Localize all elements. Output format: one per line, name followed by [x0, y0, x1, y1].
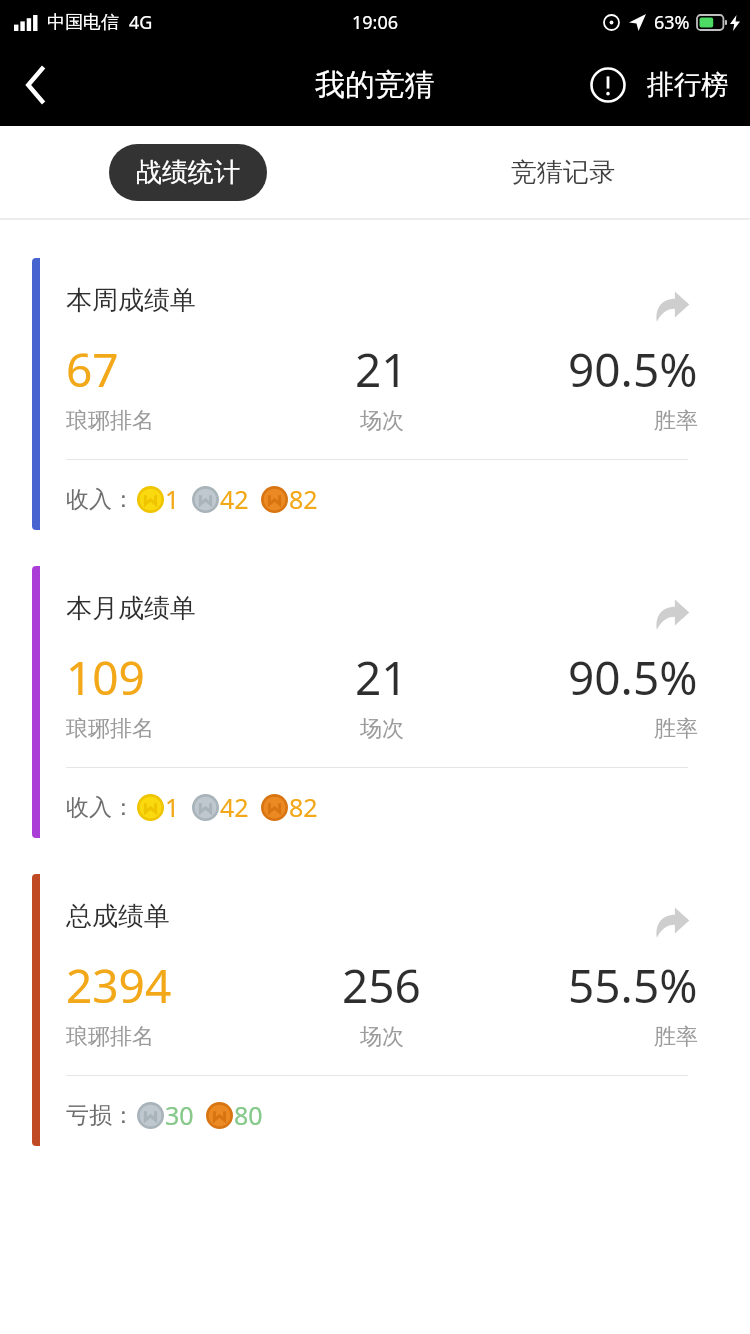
staticText: 场次 [360, 1023, 404, 1051]
staticText: 琅琊排名 [66, 715, 154, 743]
button[interactable]: 总成绩单 [32, 874, 718, 1146]
staticText: 1 [165, 790, 180, 824]
staticText: 42 [220, 790, 249, 824]
staticText: 30 [165, 1098, 194, 1132]
staticText: 4G [129, 10, 153, 35]
staticText: 战绩统计 [136, 156, 240, 189]
staticText: 收入： [66, 793, 135, 822]
staticText: 收入： [66, 485, 135, 514]
staticText: 琅琊排名 [66, 407, 154, 435]
staticText: 19:06 [352, 10, 399, 35]
button[interactable]: Share [650, 592, 694, 636]
staticText: 2394 [66, 954, 172, 1017]
staticText: 1 [165, 482, 180, 516]
staticText: 21 [355, 338, 408, 401]
staticText: 67 [66, 338, 119, 401]
staticText: 本周成绩单 [66, 284, 196, 317]
staticText: 109 [66, 646, 145, 709]
button[interactable]: 本周成绩单 [32, 258, 718, 530]
staticText: 琅琊排名 [66, 1023, 154, 1051]
staticText: 80 [234, 1098, 263, 1132]
staticText: 本月成绩单 [66, 592, 196, 625]
button[interactable]: 战绩统计 [0, 126, 375, 218]
staticText: 82 [289, 790, 318, 824]
staticText: 胜率 [654, 715, 698, 743]
staticText: 63% [654, 10, 690, 35]
staticText: 55.5% [568, 954, 698, 1017]
staticText: 排行榜 [647, 68, 728, 102]
staticText: 42 [220, 482, 249, 516]
staticText: 82 [289, 482, 318, 516]
staticText: 我的竞猜 [315, 66, 435, 104]
staticText: 总成绩单 [66, 900, 170, 933]
button[interactable]: Share [650, 284, 694, 328]
button[interactable]: 排行榜 [647, 68, 728, 102]
staticText: 中国电信 [47, 11, 119, 34]
button[interactable]: Info [579, 56, 637, 114]
button[interactable]: 本月成绩单 [32, 566, 718, 838]
button[interactable]: Share [650, 900, 694, 944]
staticText: 21 [355, 646, 408, 709]
staticText: 256 [342, 954, 421, 1017]
button[interactable]: 竞猜记录 [375, 126, 750, 218]
staticText: 胜率 [654, 1023, 698, 1051]
button[interactable]: Back [6, 54, 68, 116]
staticText: 竞猜记录 [511, 156, 615, 189]
staticText: 胜率 [654, 407, 698, 435]
staticText: 场次 [360, 407, 404, 435]
staticText: 90.5% [568, 338, 698, 401]
staticText: 场次 [360, 715, 404, 743]
staticText: 亏损： [66, 1101, 135, 1130]
staticText: 90.5% [568, 646, 698, 709]
